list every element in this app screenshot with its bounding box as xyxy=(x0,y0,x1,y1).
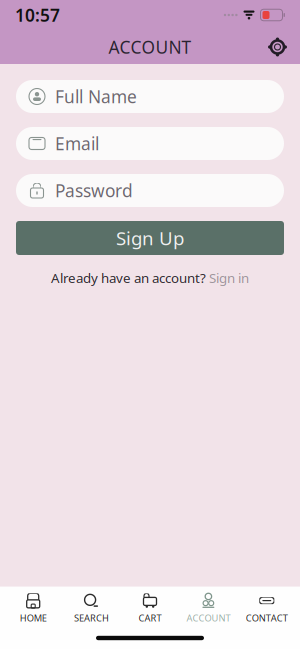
staticText: CART xyxy=(138,612,161,624)
staticText: ACCOUNT xyxy=(186,612,230,624)
button[interactable]: CONTACT xyxy=(238,587,296,627)
button[interactable]: Email xyxy=(16,127,284,160)
button[interactable]: Full Name xyxy=(16,80,284,113)
staticText: CONTACT xyxy=(246,612,288,624)
staticText: Sign Up xyxy=(116,226,184,250)
staticText: 10:57 xyxy=(15,3,60,26)
button[interactable]: SEARCH xyxy=(62,587,121,627)
staticText: ACCOUNT xyxy=(108,35,191,58)
button[interactable]: Settings xyxy=(261,30,294,63)
staticText: Sign in xyxy=(209,269,249,287)
button[interactable]: CART xyxy=(121,587,179,627)
button[interactable]: HOME xyxy=(4,587,62,627)
staticText: Email xyxy=(55,132,99,155)
button[interactable]: Password xyxy=(16,174,284,207)
button[interactable]: ACCOUNT xyxy=(179,587,238,627)
button[interactable]: Already have an account? xyxy=(51,269,249,287)
staticText: Password xyxy=(55,179,133,202)
button[interactable]: Sign Up xyxy=(16,221,284,255)
staticText: SEARCH xyxy=(74,612,109,624)
staticText: HOME xyxy=(20,612,47,624)
staticText: Full Name xyxy=(55,85,137,108)
staticText: Already have an account? xyxy=(51,269,206,287)
